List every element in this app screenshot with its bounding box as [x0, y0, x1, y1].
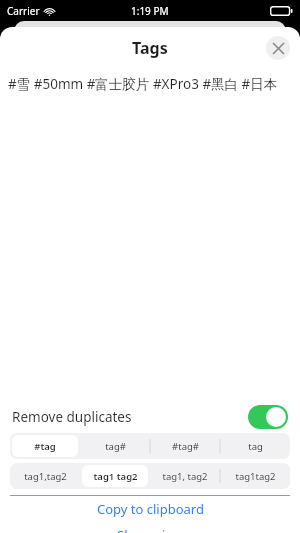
staticText: Share via... [117, 526, 183, 533]
staticText: Tags [132, 37, 168, 59]
staticText: tag1, tag2 [162, 470, 208, 483]
staticText: tag1,tag2 [24, 470, 67, 483]
staticText: #tag# [172, 440, 199, 453]
button[interactable]: Copy to clipboard [0, 496, 300, 522]
staticText: 1:19 PM [131, 4, 169, 18]
button[interactable]: tag [222, 435, 288, 457]
staticText: Carrier [7, 4, 40, 18]
button[interactable]: tag1 tag2 [82, 465, 148, 487]
staticText: tag [248, 440, 263, 453]
button[interactable]: tag1tag2 [222, 465, 288, 487]
staticText: Copy to clipboard [97, 500, 204, 518]
button[interactable]: tag# [82, 435, 148, 457]
button[interactable]: #tag# [152, 435, 218, 457]
button[interactable]: Remove duplicates toggle [248, 405, 288, 429]
button[interactable]: Share via... [0, 522, 300, 533]
staticText: #tag [34, 440, 56, 453]
button[interactable]: tag1, tag2 [152, 465, 218, 487]
staticText: tag1 tag2 [93, 470, 138, 483]
button[interactable]: Remove duplicates [0, 401, 300, 433]
button[interactable]: Close [266, 36, 290, 60]
staticText: #雪 #50mm #富士胶片 #XPro3 #黑白 #日本 [8, 75, 300, 93]
staticText: tag# [105, 440, 126, 453]
staticText: tag1tag2 [235, 470, 276, 483]
button[interactable]: #tag [12, 435, 78, 457]
button[interactable]: tag1,tag2 [12, 465, 78, 487]
staticText: Remove duplicates [12, 408, 132, 426]
